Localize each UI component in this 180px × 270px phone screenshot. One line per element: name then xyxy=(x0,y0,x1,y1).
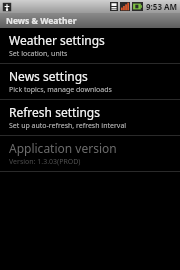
staticText: 9:53 AM xyxy=(146,1,178,12)
staticText: Set up auto-refresh, refresh interval xyxy=(9,121,127,131)
staticText: Set location, units xyxy=(9,49,68,59)
staticText: News settings xyxy=(9,68,88,84)
button[interactable]: Application version xyxy=(0,136,180,171)
button[interactable]: Refresh settings xyxy=(0,100,180,135)
staticText: News & Weather xyxy=(6,15,77,27)
staticText: Weather settings xyxy=(9,32,105,48)
staticText: Version: 1.3.03(PROD) xyxy=(9,157,81,167)
staticText: Application version xyxy=(9,140,117,156)
staticText: Refresh settings xyxy=(9,104,100,120)
button[interactable]: Weather settings xyxy=(0,28,180,63)
button[interactable]: News settings xyxy=(0,64,180,99)
staticText: Pick topics, manage downloads xyxy=(9,85,112,95)
